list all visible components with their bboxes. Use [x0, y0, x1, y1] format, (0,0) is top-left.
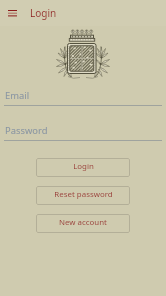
- button[interactable]: Menu: [1, 2, 23, 24]
- staticText: Login: [30, 6, 57, 20]
- button[interactable]: Login: [36, 158, 130, 177]
- staticText: Reset password: [54, 189, 113, 200]
- staticText: Login: [73, 161, 94, 172]
- staticText: Password: [5, 124, 48, 137]
- staticText: New account: [59, 217, 107, 228]
- staticText: Email: [5, 89, 30, 102]
- button[interactable]: Reset password: [36, 186, 130, 205]
- button[interactable]: New account: [36, 214, 130, 233]
